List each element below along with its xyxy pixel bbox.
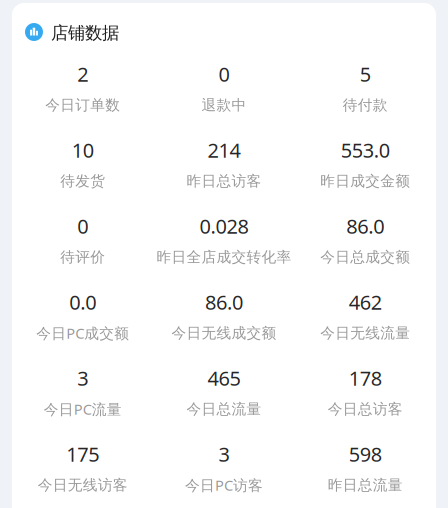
staticText: 0.0	[69, 289, 96, 315]
staticText: 86.0	[346, 213, 384, 239]
staticText: 462	[349, 289, 382, 315]
staticText: 2	[77, 61, 88, 87]
staticText: 178	[349, 365, 382, 391]
button[interactable]: 553.0	[295, 140, 436, 189]
button[interactable]: 598	[295, 444, 436, 493]
staticText: 今日无线流量	[320, 324, 410, 342]
staticText: 今日PC流量	[44, 399, 122, 419]
staticText: 86.0	[205, 289, 243, 315]
staticText: 店铺数据	[51, 22, 119, 44]
staticText: 昨日总流量	[328, 476, 403, 494]
staticText: 待评价	[60, 248, 105, 266]
staticText: 今日订单数	[45, 96, 120, 114]
staticText: 今日PC成交额	[36, 323, 129, 343]
button[interactable]: 3	[12, 368, 153, 417]
staticText: 今日总流量	[186, 400, 261, 418]
staticText: 465	[207, 365, 240, 391]
staticText: 10	[72, 137, 94, 163]
staticText: 3	[77, 365, 88, 391]
staticText: 昨日全店成交转化率	[156, 248, 291, 266]
staticText: 0	[218, 61, 229, 87]
button[interactable]: 465	[153, 368, 295, 417]
button[interactable]: 0	[12, 216, 153, 265]
staticText: 175	[66, 441, 99, 467]
button[interactable]: 175	[12, 444, 153, 493]
staticText: 待付款	[343, 96, 388, 114]
button[interactable]: 214	[153, 140, 295, 189]
button[interactable]: 86.0	[153, 292, 295, 341]
staticText: 待发货	[60, 172, 105, 190]
staticText: 3	[218, 441, 229, 467]
staticText: 0	[77, 213, 88, 239]
button[interactable]: 3	[153, 444, 295, 493]
staticText: 今日PC访客	[185, 475, 263, 495]
staticText: 退款中	[201, 96, 246, 114]
button[interactable]: 178	[295, 368, 436, 417]
staticText: 昨日总访客	[186, 172, 261, 190]
button[interactable]: 2	[12, 64, 153, 113]
staticText: 553.0	[341, 137, 390, 163]
staticText: 今日无线成交额	[171, 324, 276, 342]
button[interactable]: 462	[295, 292, 436, 341]
staticText: 598	[349, 441, 382, 467]
staticText: 今日总访客	[328, 400, 403, 418]
staticText: 今日无线访客	[38, 476, 128, 494]
button[interactable]: 10	[12, 140, 153, 189]
button[interactable]: 0	[153, 64, 295, 113]
button[interactable]: 86.0	[295, 216, 436, 265]
staticText: 214	[207, 137, 240, 163]
button[interactable]: 0.0	[12, 292, 153, 341]
staticText: 0.028	[199, 213, 248, 239]
staticText: 5	[360, 61, 371, 87]
button[interactable]: 5	[295, 64, 436, 113]
staticText: 昨日成交金额	[320, 172, 410, 190]
button[interactable]: 0.028	[153, 216, 295, 265]
staticText: 今日总成交额	[320, 248, 410, 266]
